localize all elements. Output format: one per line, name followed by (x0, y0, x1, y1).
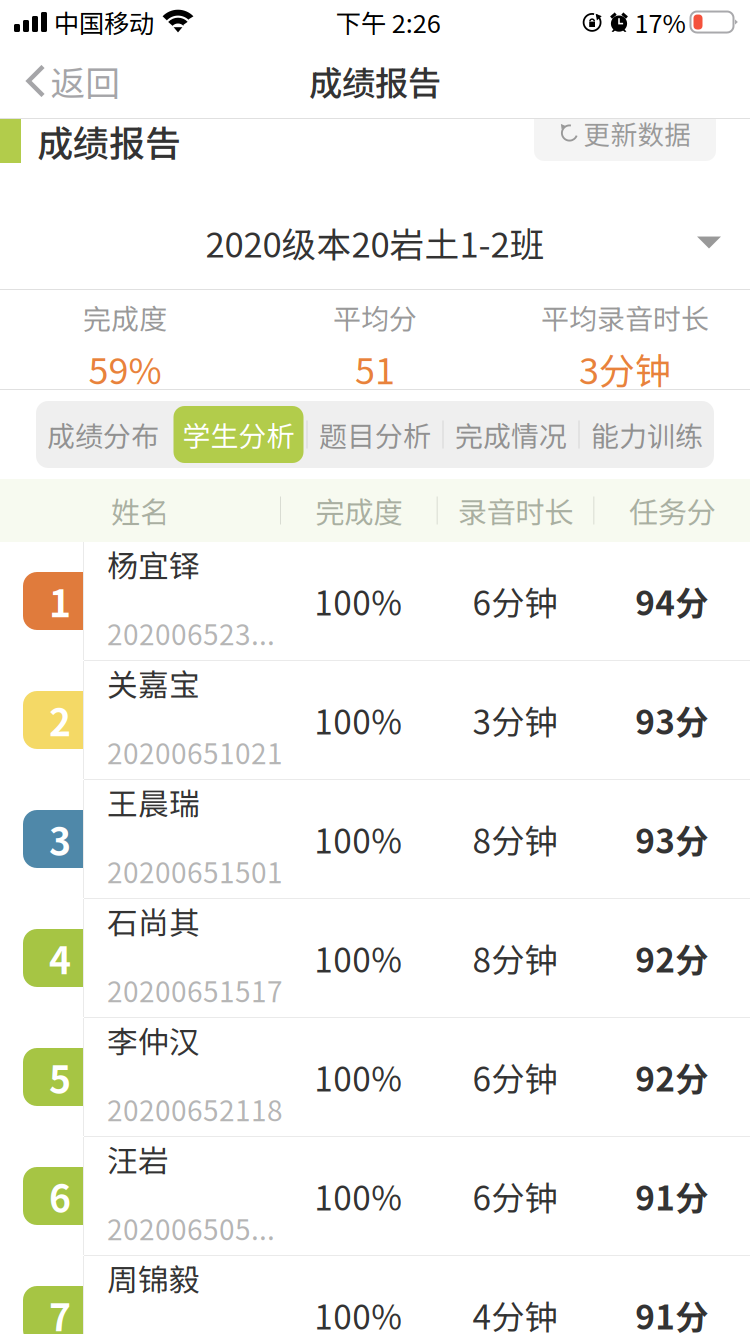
button[interactable]: 3 (0, 780, 750, 898)
staticText: 李仲汉 (107, 1018, 200, 1062)
staticText: 100% (314, 577, 402, 625)
staticText: 完成度 (83, 297, 167, 337)
staticText: 4 (49, 931, 71, 985)
staticText: 关嘉宝 (107, 661, 200, 705)
button[interactable]: 能力训练 (579, 401, 714, 468)
staticText: 7 (49, 1288, 71, 1334)
button[interactable]: 完成情况 (443, 401, 578, 468)
staticText: 完成度 (315, 489, 402, 532)
staticText: 100% (314, 1053, 402, 1101)
staticText: 完成情况 (455, 414, 567, 455)
staticText: 中国移动 (54, 4, 154, 40)
button[interactable]: 成绩分布 (35, 401, 170, 468)
button[interactable]: 题目分析 (307, 401, 442, 468)
staticText: 100% (314, 815, 402, 863)
staticText: 题目分析 (319, 414, 431, 455)
staticText: 姓名 (111, 489, 169, 532)
staticText: 3分钟 (472, 696, 557, 744)
staticText: 5 (49, 1050, 71, 1104)
staticText: 6分钟 (472, 1053, 557, 1101)
staticText: 成绩分布 (47, 414, 159, 455)
staticText: 4分钟 (472, 1291, 557, 1334)
staticText: 王晨瑞 (107, 780, 200, 824)
staticText: 94分 (635, 577, 708, 625)
staticText: 92分 (635, 934, 708, 982)
staticText: 100% (314, 934, 402, 982)
staticText: 任务分 (629, 489, 716, 532)
staticText: 3分钟 (579, 342, 671, 395)
staticText: 录音时长 (457, 489, 573, 532)
staticText: 下午 2:26 (336, 4, 441, 40)
staticText: 202006505... (107, 1208, 275, 1248)
staticText: 6分钟 (472, 1172, 557, 1220)
staticText: 8分钟 (472, 815, 557, 863)
staticText: 91分 (635, 1291, 708, 1334)
staticText: 100% (314, 1291, 402, 1334)
staticText: 能力训练 (591, 414, 703, 455)
staticText: 更新数据 (583, 114, 691, 152)
staticText: 3 (49, 812, 71, 866)
staticText: 返回 (50, 56, 120, 106)
staticText: 59% (88, 342, 161, 395)
button[interactable]: 2 (0, 661, 750, 779)
staticText: 周锦毅 (107, 1256, 200, 1300)
staticText: 2020级本20岩土1-2班 (205, 217, 544, 268)
button[interactable]: 学生分析 (170, 401, 306, 468)
staticText: 20200652118 (107, 1089, 283, 1129)
button[interactable]: 5 (0, 1018, 750, 1136)
staticText: 学生分析 (182, 414, 294, 455)
staticText: 20200651517 (107, 970, 283, 1010)
staticText: 202006523... (107, 613, 275, 653)
staticText: 91分 (635, 1172, 708, 1220)
staticText: 杨宜铎 (107, 542, 200, 586)
staticText: 17% (634, 4, 685, 40)
staticText: 100% (314, 696, 402, 744)
staticText: 92分 (635, 1053, 708, 1101)
staticText: 石尚其 (107, 899, 200, 943)
button[interactable]: 4 (0, 899, 750, 1017)
staticText: 20200651501 (107, 851, 283, 891)
staticText: 100% (314, 1172, 402, 1220)
button[interactable]: 更新数据 (534, 105, 716, 177)
staticText: 20200651021 (107, 732, 283, 772)
staticText: 成绩报告 (37, 115, 181, 167)
staticText: 成绩报告 (309, 57, 441, 105)
button[interactable]: 返回 (0, 44, 136, 118)
button[interactable]: 2020级本20岩土1-2班 (0, 172, 750, 289)
staticText: 汪岩 (107, 1137, 169, 1181)
staticText: 8分钟 (472, 934, 557, 982)
staticText: 平均分 (333, 297, 417, 337)
staticText: 93分 (635, 815, 708, 863)
staticText: 6分钟 (472, 577, 557, 625)
staticText: 平均录音时长 (541, 297, 709, 337)
staticText: 93分 (635, 696, 708, 744)
staticText: 1 (49, 574, 71, 628)
staticText: 51 (355, 342, 395, 395)
staticText: 6 (49, 1169, 71, 1223)
button[interactable]: 7 (0, 1256, 750, 1334)
staticText: 2 (49, 693, 71, 747)
button[interactable]: 6 (0, 1137, 750, 1255)
button[interactable]: 1 (0, 542, 750, 660)
